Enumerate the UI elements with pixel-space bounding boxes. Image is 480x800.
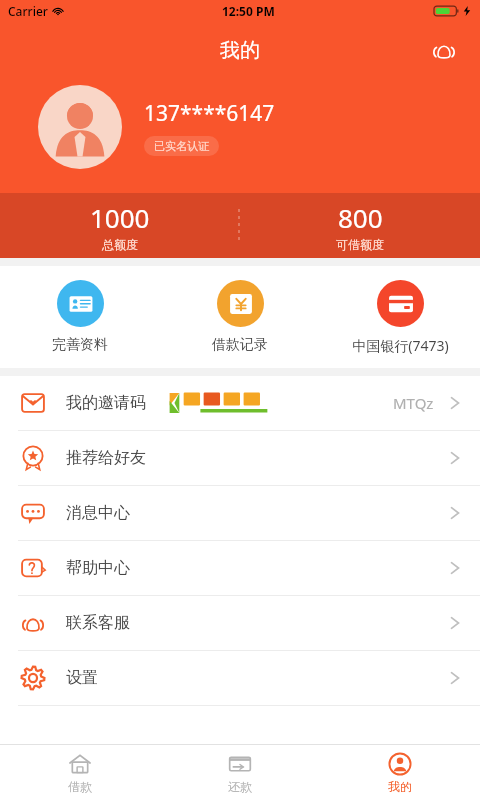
staticText: 联系客服	[66, 613, 130, 633]
button[interactable]: 联系客服	[0, 596, 480, 650]
button[interactable]: 800	[240, 200, 480, 252]
staticText: 我的邀请码	[66, 393, 146, 413]
staticText: 中国银行(7473)	[352, 336, 449, 355]
button[interactable]: 中国银行(7473)	[320, 266, 480, 368]
staticText: 还款	[228, 779, 252, 794]
button[interactable]: 1000	[0, 200, 239, 252]
staticText: 借款	[68, 779, 92, 794]
staticText: 借款记录	[212, 336, 268, 354]
button[interactable]: 完善资料	[0, 266, 160, 368]
staticText: 推荐给好友	[66, 448, 146, 468]
staticText: 设置	[66, 668, 98, 688]
staticText: 完善资料	[52, 336, 108, 354]
button[interactable]: 帮助中心	[0, 541, 480, 595]
staticText: 我的	[220, 38, 260, 63]
staticText: 12:50 PM	[222, 3, 275, 19]
button[interactable]: 借款记录	[160, 266, 320, 368]
button[interactable]: 我的邀请码	[0, 376, 480, 430]
staticText: 800	[338, 200, 383, 235]
staticText: Carrier	[8, 3, 48, 19]
staticText: 我的	[388, 779, 412, 794]
staticText: 137****6147	[144, 99, 275, 128]
staticText: 总额度	[102, 237, 138, 252]
button[interactable]: 推荐给好友	[0, 431, 480, 485]
button[interactable]: 设置	[0, 651, 480, 705]
staticText: 消息中心	[66, 503, 130, 523]
button[interactable]: 已实名认证	[144, 136, 219, 156]
button[interactable]: 消息中心	[0, 486, 480, 540]
staticText: 已实名认证	[154, 139, 209, 153]
button[interactable]: 还款	[160, 745, 320, 800]
staticText: 帮助中心	[66, 558, 130, 578]
staticText: MTQz	[393, 393, 434, 413]
staticText: 可借额度	[336, 237, 384, 252]
button[interactable]: Customer service	[426, 32, 462, 68]
button[interactable]: 我的	[320, 745, 480, 800]
button[interactable]: 借款	[0, 745, 160, 800]
staticText: 1000	[90, 200, 150, 235]
